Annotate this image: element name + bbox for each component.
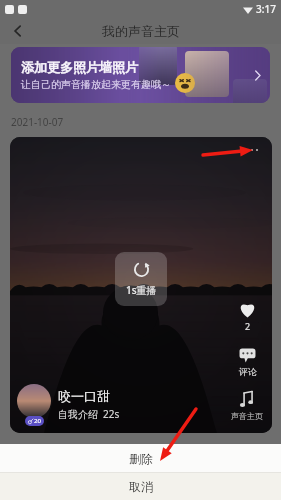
staticText: 2021-10-07: [11, 115, 64, 129]
button[interactable]: 取消: [0, 473, 281, 500]
button[interactable]: 20: [17, 384, 120, 424]
staticText: 声音主页: [231, 411, 263, 421]
staticText: 让自己的声音播放起来更有趣哦～: [21, 78, 171, 91]
staticText: 添加更多照片墙照片: [21, 59, 138, 75]
staticText: 我的声音主页: [102, 23, 180, 39]
button[interactable]: 1s重播: [115, 252, 167, 306]
button[interactable]: Like: [237, 299, 258, 332]
staticText: 1s重播: [126, 283, 157, 297]
button[interactable]: 评论: [238, 345, 257, 377]
staticText: 2: [245, 320, 251, 332]
button[interactable]: 删除: [0, 444, 281, 472]
button[interactable]: 添加更多照片墙照片: [11, 47, 270, 103]
staticText: 3:17: [256, 2, 276, 16]
button[interactable]: More options: [239, 143, 265, 157]
staticText: 20: [34, 417, 41, 425]
button[interactable]: More options: [10, 137, 272, 433]
staticText: 22s: [103, 407, 120, 421]
staticText: 自我介绍: [58, 408, 98, 421]
staticText: 取消: [129, 479, 153, 494]
staticText: 评论: [239, 366, 257, 377]
button[interactable]: 声音主页: [231, 390, 263, 421]
button[interactable]: Back: [6, 19, 30, 43]
staticText: 删除: [129, 451, 153, 466]
staticText: 咬一口甜: [58, 388, 110, 404]
